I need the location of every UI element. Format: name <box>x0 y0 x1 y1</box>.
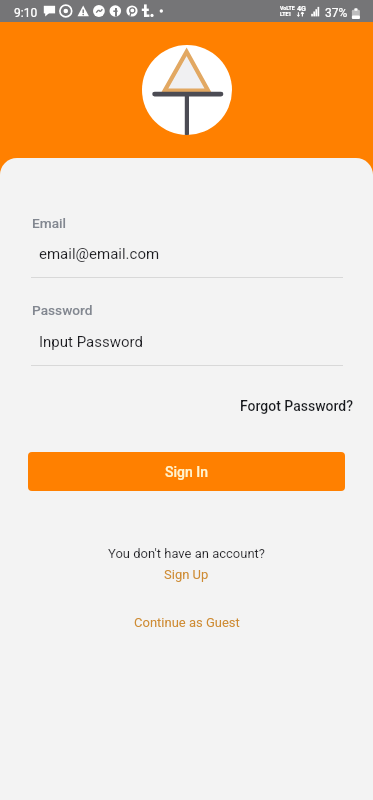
button[interactable]: Continue as Guest <box>128 613 246 632</box>
staticText: Password <box>32 302 93 318</box>
button[interactable]: Input Password <box>31 326 343 366</box>
button[interactable]: email@email.com <box>31 238 343 278</box>
staticText: LTE1 <box>280 11 292 17</box>
staticText: Sign Up <box>164 567 209 582</box>
button[interactable]: Forgot Password? <box>238 396 356 416</box>
button[interactable]: Sign Up <box>158 565 215 584</box>
staticText: Sign In <box>165 464 209 480</box>
staticText: 37% <box>325 6 348 20</box>
staticText: email@email.com <box>39 245 160 263</box>
staticText: VoLTE <box>280 5 295 11</box>
staticText: You don't have an account? <box>108 546 265 561</box>
button[interactable]: Sign In <box>28 452 345 491</box>
staticText: Input Password <box>39 333 143 351</box>
staticText: Continue as Guest <box>134 615 240 630</box>
staticText: 9:10 <box>14 6 38 20</box>
staticText: Email <box>32 215 67 231</box>
staticText: 4G <box>297 4 307 12</box>
staticText: Forgot Password? <box>240 398 354 414</box>
